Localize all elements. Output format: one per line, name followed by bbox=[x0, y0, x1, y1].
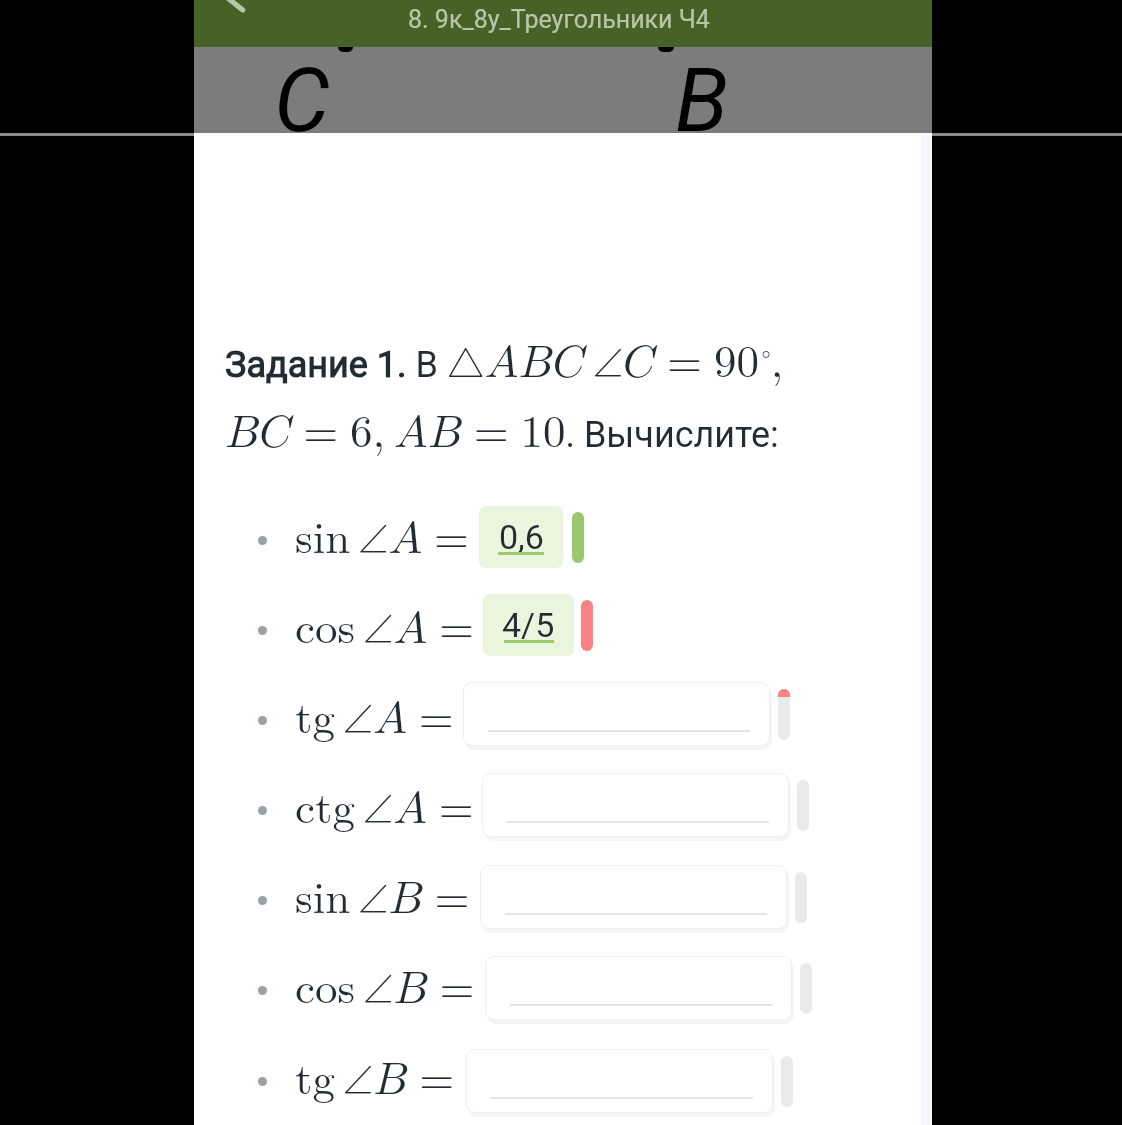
button[interactable] bbox=[467, 1050, 772, 1112]
staticText: cos ∠𝐴 = bbox=[295, 592, 475, 656]
staticText: Задание 1. В △𝐴𝐵𝐶 ∠𝐶 = 90 ∘, bbox=[225, 326, 784, 390]
staticText: sin ∠𝐵 = bbox=[295, 862, 470, 926]
staticText: ctg ∠𝐴 = bbox=[295, 772, 474, 836]
button[interactable] bbox=[481, 866, 786, 928]
staticText: 𝐵𝐶 = 6, 𝐴𝐵 = 10. Вычислите: bbox=[225, 396, 779, 460]
button[interactable]: Answer status bbox=[778, 689, 790, 740]
staticText: tg ∠𝐴 = bbox=[295, 682, 454, 746]
staticText: 8. 9к_8у_Треугольники Ч4 bbox=[408, 5, 710, 34]
button[interactable]: Answer status bbox=[572, 512, 584, 563]
staticText: C bbox=[274, 49, 330, 135]
button[interactable]: 4/5 bbox=[483, 594, 574, 656]
button[interactable] bbox=[464, 683, 769, 745]
button[interactable]: Answer status bbox=[795, 872, 807, 923]
button[interactable] bbox=[483, 774, 788, 836]
staticText: B bbox=[675, 49, 729, 135]
staticText: cos ∠𝐵 = bbox=[295, 952, 475, 1016]
staticText: tg ∠𝐵 = bbox=[295, 1043, 455, 1107]
button[interactable]: Answer status bbox=[800, 963, 812, 1014]
button[interactable]: Answer status bbox=[781, 1056, 793, 1107]
button[interactable]: Back bbox=[208, 0, 264, 23]
button[interactable] bbox=[486, 957, 791, 1019]
staticText: 4/5 bbox=[502, 605, 555, 645]
button[interactable]: Answer status bbox=[581, 600, 593, 651]
staticText: sin ∠𝐴 = bbox=[295, 502, 470, 566]
button[interactable]: Answer status bbox=[797, 780, 809, 831]
button[interactable]: 0,6 bbox=[479, 506, 563, 568]
staticText: 0,6 bbox=[499, 517, 544, 557]
